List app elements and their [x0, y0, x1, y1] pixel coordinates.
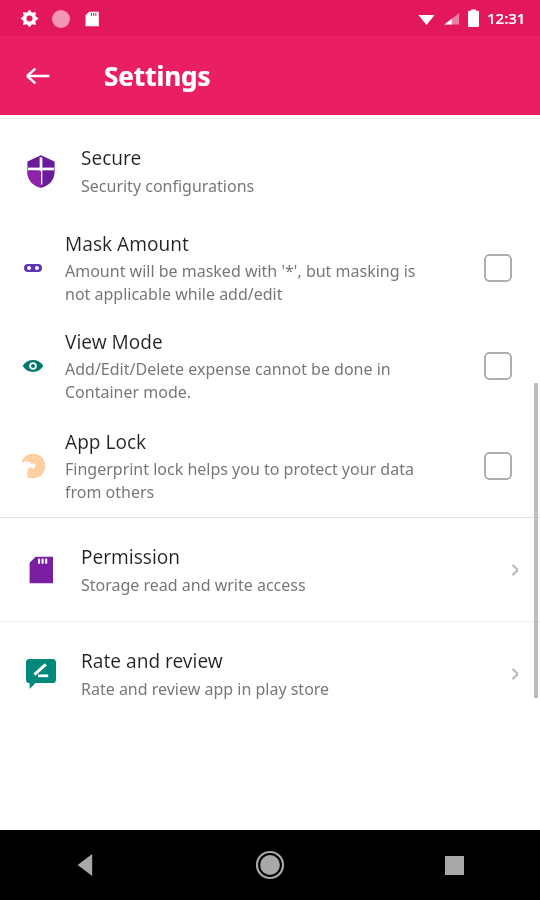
- button[interactable]: Permission: [0, 518, 540, 621]
- staticText: Permission: [81, 544, 181, 570]
- staticText: Storage read and write access: [81, 574, 306, 596]
- button[interactable]: Home: [244, 839, 296, 891]
- button[interactable]: Mask Amount: [455, 254, 540, 282]
- button[interactable]: App Lock: [455, 452, 540, 480]
- button[interactable]: Rate and review: [0, 622, 540, 725]
- button[interactable]: Mask Amount: [0, 217, 540, 315]
- staticText: Settings: [104, 58, 211, 93]
- staticText: Mask Amount: [65, 231, 189, 257]
- staticText: 12:31: [487, 8, 526, 28]
- staticText: Rate and review: [81, 648, 223, 674]
- staticText: Add/Edit/Delete expense cannot be done i…: [65, 358, 439, 403]
- button[interactable]: View Mode: [455, 352, 540, 380]
- staticText: Fingerprint lock helps you to protect yo…: [65, 458, 439, 503]
- button[interactable]: View Mode: [0, 315, 540, 415]
- button[interactable]: Back: [14, 52, 62, 100]
- button[interactable]: Back: [60, 839, 112, 891]
- staticText: View Mode: [65, 329, 163, 355]
- staticText: App Lock: [65, 429, 147, 455]
- button[interactable]: App Lock: [0, 415, 540, 517]
- staticText: Rate and review app in play store: [81, 678, 330, 700]
- button[interactable]: Secure: [0, 119, 540, 217]
- staticText: Security configurations: [81, 175, 255, 197]
- staticText: Amount will be masked with '*', but mask…: [65, 260, 439, 305]
- staticText: Secure: [81, 145, 142, 171]
- button[interactable]: Recents: [428, 839, 480, 891]
